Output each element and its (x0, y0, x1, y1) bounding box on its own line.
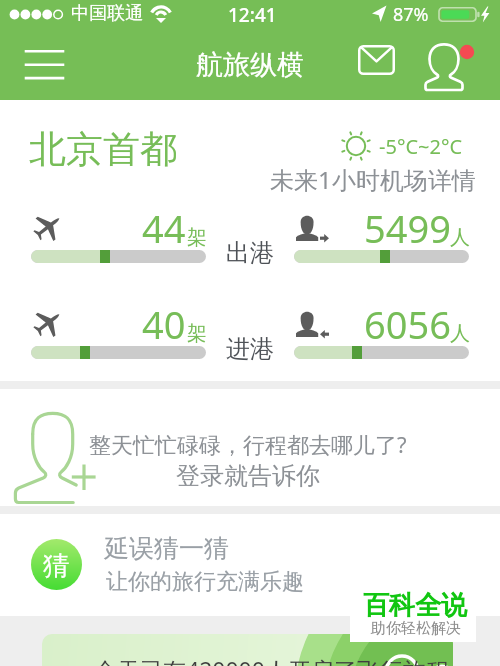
staticText: 44 (142, 202, 186, 254)
staticText: 人 (450, 225, 470, 250)
staticText: 百科全说 (363, 589, 467, 622)
staticText: 6056 (364, 298, 451, 350)
staticText: 整天忙忙碌碌，行程都去哪儿了? (89, 429, 407, 459)
staticText: 架 (187, 225, 207, 250)
staticText: 未来1小时机场详情 (270, 163, 476, 196)
staticText: 延误猜一猜 (104, 533, 229, 564)
button[interactable]: 全天已有420000人开启了飞行旅程 (42, 634, 453, 666)
staticText: 北京首都 (29, 126, 177, 173)
staticText: 12:41 (228, 2, 277, 28)
button[interactable]: Messages (344, 30, 408, 90)
staticText: 5499 (364, 202, 451, 254)
button[interactable]: Profile (414, 32, 480, 88)
staticText: 人 (450, 321, 470, 346)
staticText: 40 (142, 298, 186, 350)
staticText: 出港 (226, 238, 274, 268)
staticText: 猜 (43, 549, 70, 583)
staticText: 进港 (226, 334, 274, 364)
button[interactable]: Menu (10, 36, 78, 94)
button[interactable]: 整天忙忙碌碌，行程都去哪儿了? (0, 389, 500, 506)
staticText: -5°C~2°C (379, 133, 463, 160)
staticText: 87% (393, 2, 429, 27)
staticText: 让你的旅行充满乐趣 (106, 568, 304, 596)
staticText: 架 (187, 321, 207, 346)
staticText: 中国联通 (71, 2, 143, 25)
staticText: 助你轻松解决 (371, 619, 461, 638)
staticText: 全天已有420000人开启了飞行旅程 (94, 654, 449, 666)
button[interactable]: 猜 (0, 514, 500, 616)
staticText: 航旅纵横 (196, 48, 304, 82)
staticText: 登录就告诉你 (176, 461, 320, 491)
